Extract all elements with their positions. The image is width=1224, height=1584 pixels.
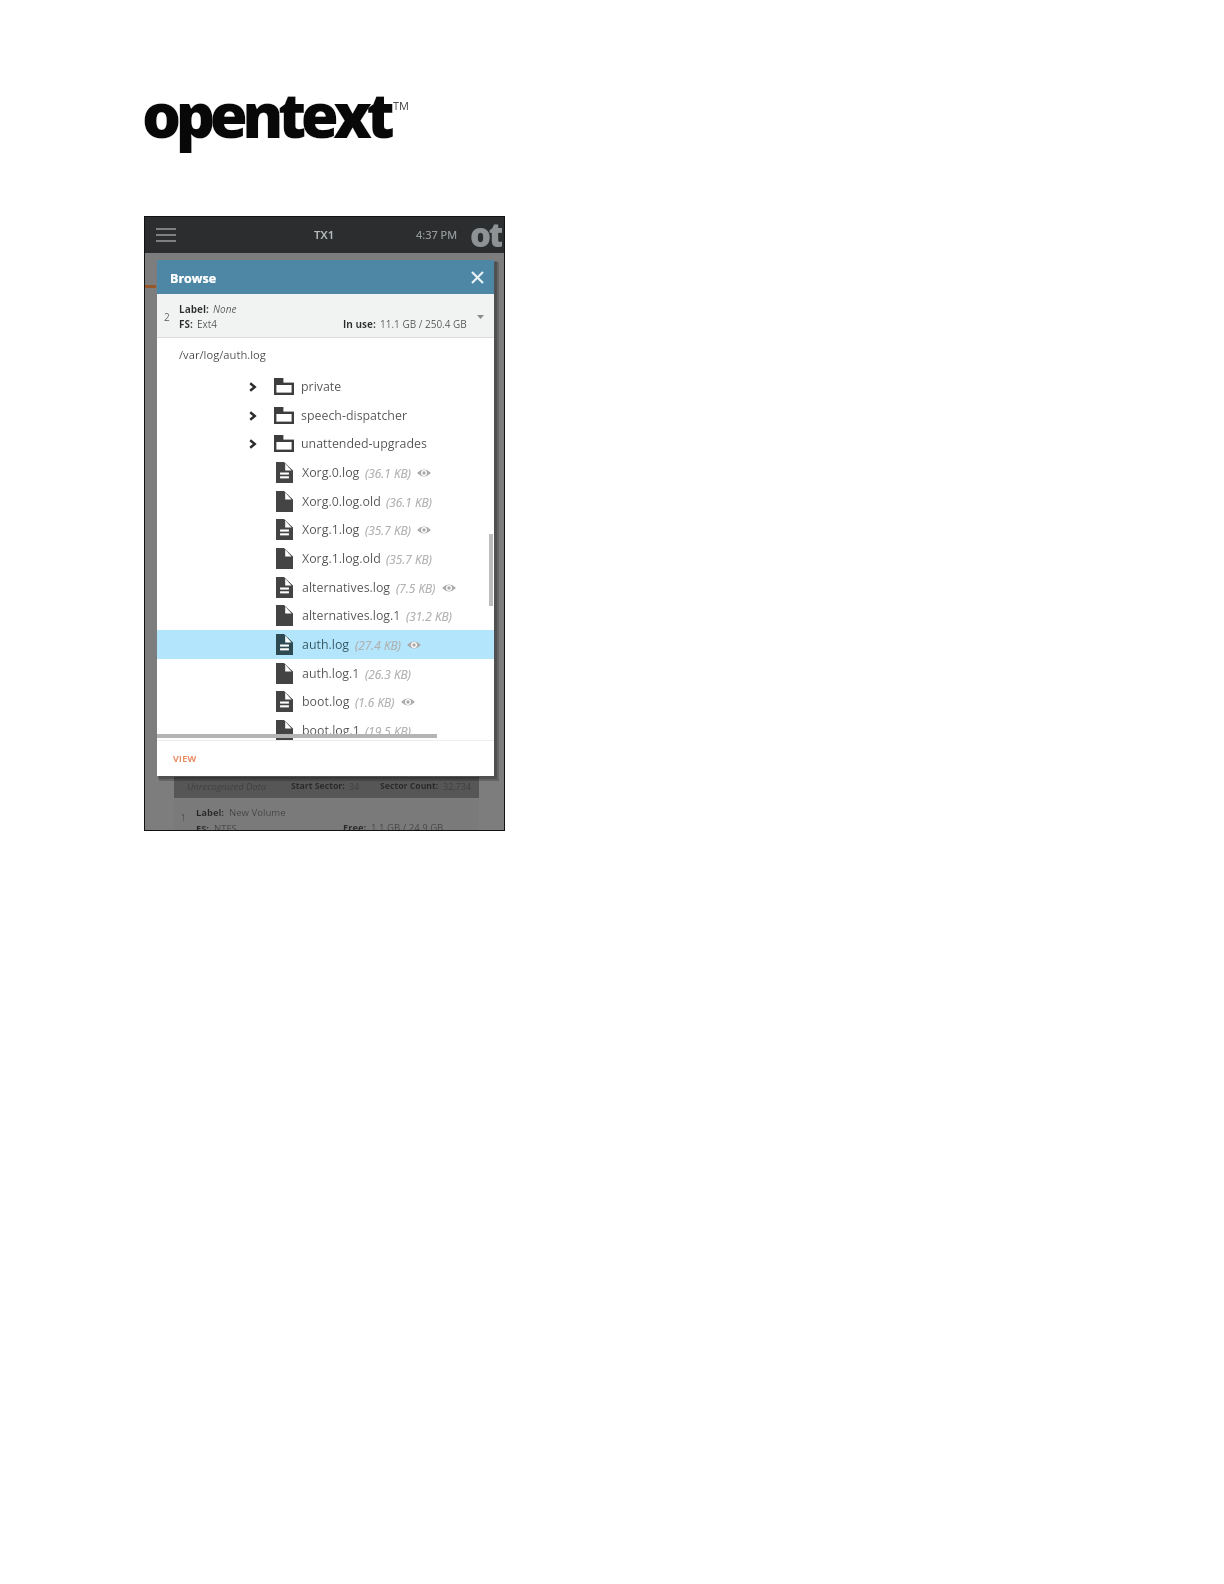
staticText: FS: (179, 317, 193, 331)
staticText: (1.6 KB) (355, 694, 395, 710)
staticText: 32,734 (443, 780, 472, 792)
staticText: 1.1 GB / 24.9 GB (371, 821, 444, 831)
staticText: TX1 (314, 227, 335, 243)
staticText: Label: (196, 806, 225, 819)
button[interactable]: boot.log.1 (157, 716, 494, 745)
staticText: Label: (179, 302, 209, 316)
staticText: 1 (181, 812, 186, 824)
staticText: TM (393, 98, 409, 113)
button[interactable]: Xorg.0.log (157, 458, 494, 487)
button[interactable]: boot.log (157, 687, 494, 716)
staticText: (7.5 KB) (396, 580, 436, 596)
staticText: (27.4 KB) (355, 637, 401, 653)
staticText: opentext (142, 72, 390, 156)
staticText: speech-dispatcher (301, 407, 407, 424)
staticText: New Volume (229, 806, 286, 819)
button[interactable]: auth.log.1 (157, 659, 494, 688)
staticText: auth.log.1 (302, 665, 360, 682)
staticText: (26.3 KB) (365, 666, 411, 682)
staticText: /var/log/auth.log (179, 347, 266, 362)
button[interactable]: Close (461, 260, 494, 294)
staticText: alternatives.log.1 (302, 607, 401, 624)
staticText: 11.1 GB / 250.4 GB (380, 317, 467, 331)
staticText: VIEW (173, 752, 197, 765)
button[interactable]: alternatives.log.1 (157, 601, 494, 630)
staticText: Free: (343, 821, 367, 831)
button[interactable]: auth.log (157, 630, 494, 659)
staticText: Xorg.1.log (302, 521, 360, 538)
staticText: boot.log (302, 693, 350, 710)
staticText: (35.7 KB) (365, 522, 411, 538)
staticText: (36.1 KB) (386, 494, 432, 510)
staticText: Ext4 (197, 317, 218, 331)
staticText: Browse (170, 270, 217, 287)
staticText: private (301, 378, 342, 395)
staticText: (19.5 KB) (365, 723, 411, 739)
staticText: In use: (343, 317, 376, 331)
staticText: boot.log.1 (302, 722, 360, 739)
staticText: unattended-upgrades (301, 435, 427, 452)
staticText: 2 (164, 310, 170, 324)
staticText: Xorg.0.log (302, 464, 360, 481)
staticText: Sector Count: (380, 780, 439, 792)
staticText: alternatives.log (302, 579, 391, 596)
button[interactable]: unattended-upgrades (157, 429, 494, 458)
staticText: Unrecognized Data (187, 780, 267, 793)
button[interactable]: Xorg.0.log.old (157, 487, 494, 516)
staticText: Xorg.1.log.old (302, 550, 381, 567)
staticText: FS: (196, 822, 210, 831)
button[interactable]: Xorg.1.log.old (157, 544, 494, 573)
button[interactable]: speech-dispatcher (157, 401, 494, 430)
staticText: Xorg.0.log.old (302, 493, 381, 510)
button[interactable]: Menu (146, 216, 176, 253)
staticText: Start Sector: (291, 780, 345, 792)
staticText: ot (470, 216, 502, 249)
button[interactable]: alternatives.log (157, 573, 494, 602)
staticText: auth.log (302, 636, 350, 653)
staticText: NTFS (214, 822, 237, 831)
staticText: 34 (349, 780, 360, 792)
button[interactable]: private (157, 372, 494, 401)
staticText: (31.2 KB) (406, 608, 452, 624)
staticText: None (213, 302, 237, 316)
button[interactable]: Xorg.1.log (157, 515, 494, 544)
staticText: 4:37 PM (416, 227, 458, 242)
staticText: (36.1 KB) (365, 465, 411, 481)
staticText: (35.7 KB) (386, 551, 432, 567)
button[interactable]: VIEW (165, 746, 205, 771)
